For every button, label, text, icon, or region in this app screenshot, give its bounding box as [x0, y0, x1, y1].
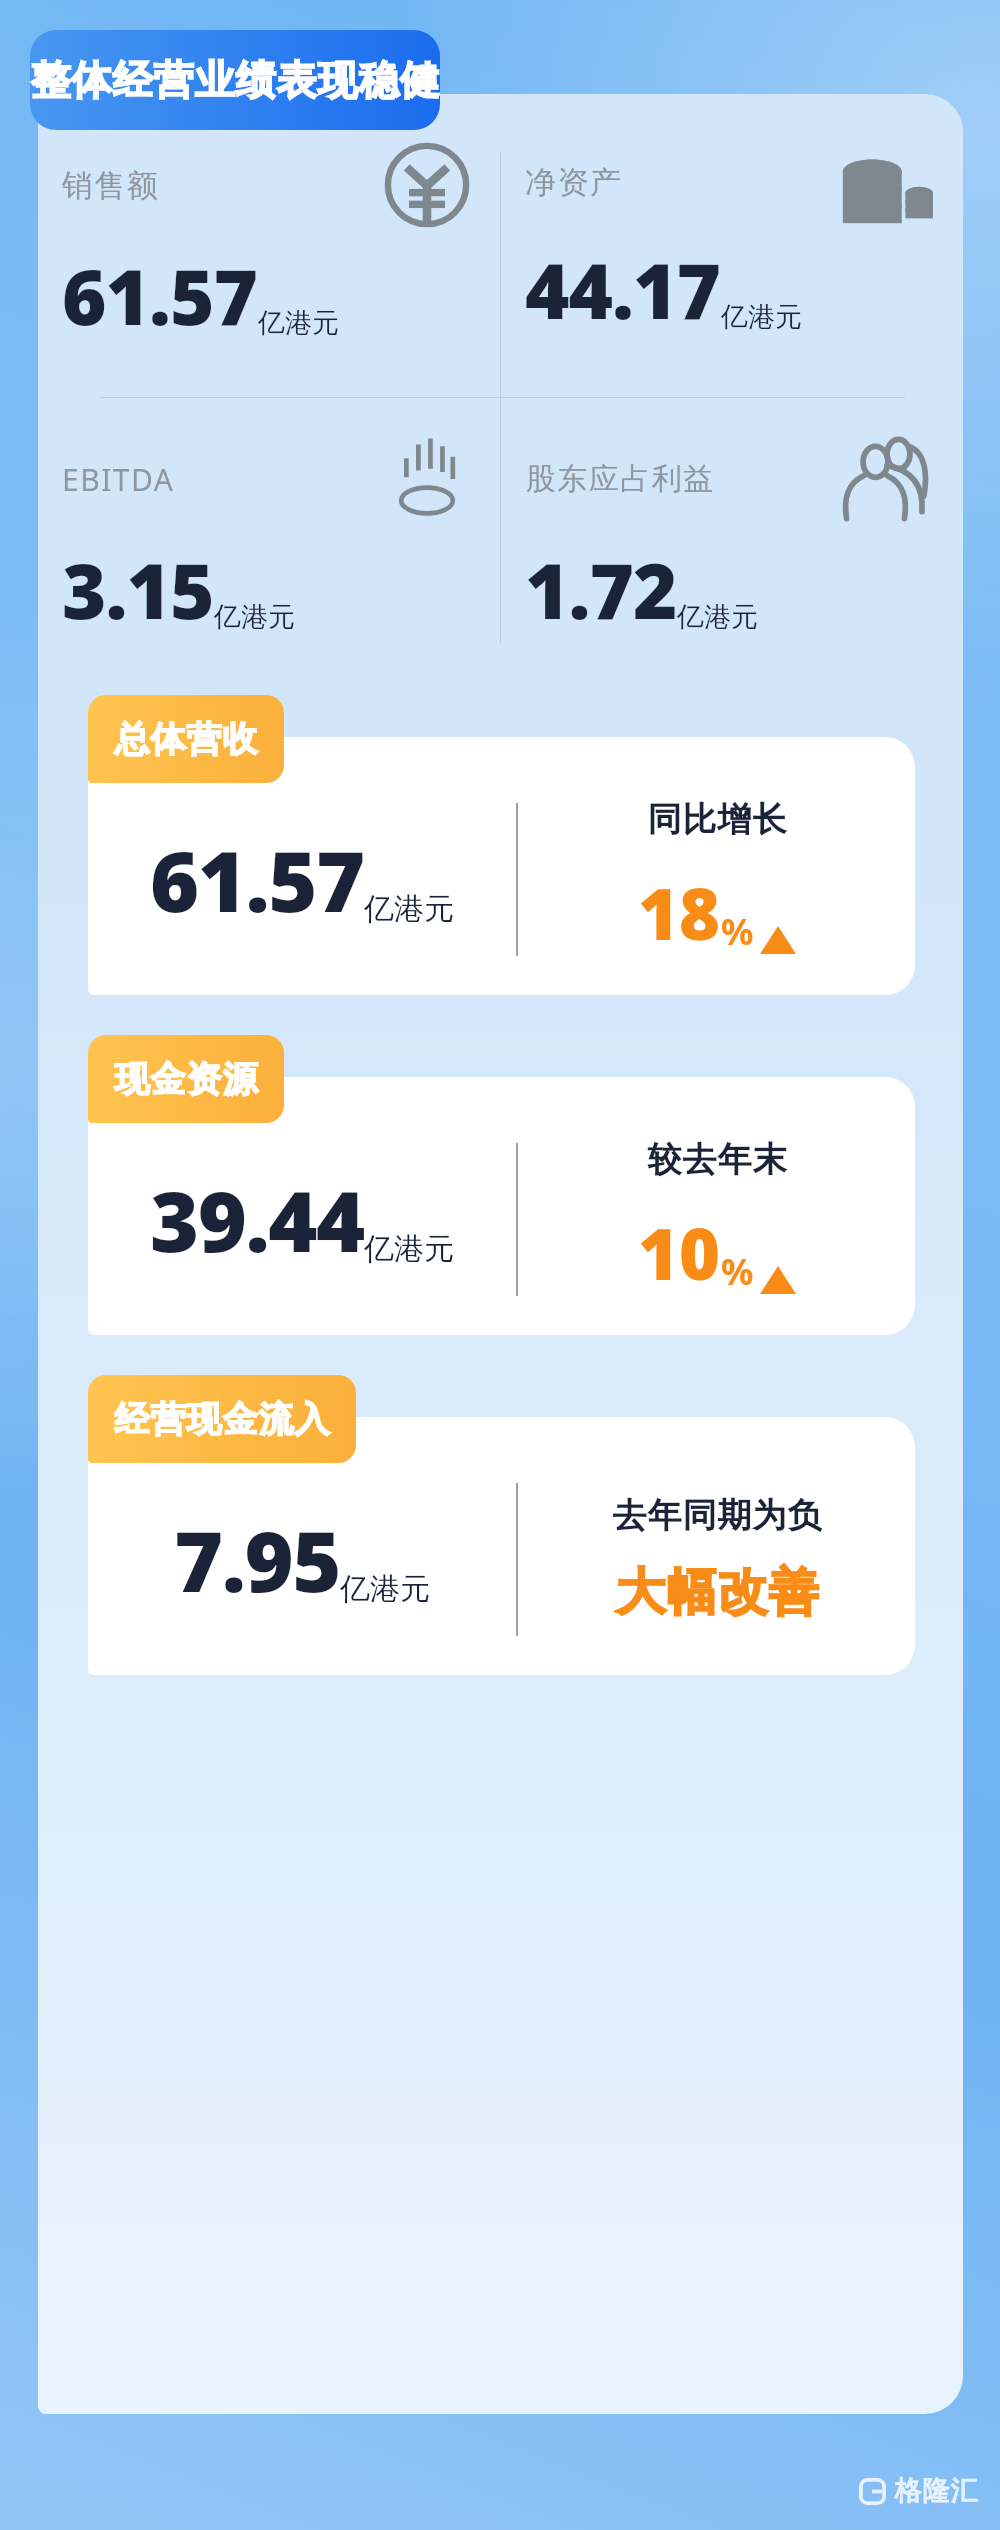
other: Sales: [384, 142, 470, 228]
staticText: 较去年末: [647, 1138, 787, 1181]
staticText: 经营现金流入: [114, 1397, 330, 1441]
staticText: 净资产: [525, 163, 623, 202]
staticText: 亿港元: [214, 600, 295, 634]
staticText: 亿港元: [340, 1570, 430, 1608]
staticText: 格隆汇: [894, 2474, 978, 2508]
staticText: 18: [638, 865, 721, 960]
staticText: 整体经营业绩表现稳健: [30, 55, 440, 105]
button[interactable]: 经营现金流入: [88, 1375, 356, 1463]
staticText: %: [721, 907, 754, 956]
staticText: 3.15: [62, 538, 214, 642]
button[interactable]: 39.44: [88, 1077, 915, 1335]
staticText: 10: [638, 1205, 721, 1300]
other: EBITDA: [384, 436, 470, 522]
staticText: 61.57: [150, 822, 364, 936]
staticText: 股东应占利益: [525, 460, 714, 498]
button[interactable]: 7.95: [88, 1417, 915, 1675]
staticText: 1.72: [525, 538, 677, 642]
staticText: %: [721, 1247, 754, 1296]
staticText: 亿港元: [258, 306, 339, 340]
staticText: 7.95: [174, 1502, 340, 1616]
staticText: 亿港元: [364, 1230, 454, 1268]
staticText: 去年同期为负: [612, 1494, 822, 1537]
button[interactable]: 61.57: [88, 737, 915, 995]
button[interactable]: 整体经营业绩表现稳健: [30, 30, 440, 130]
staticText: 大幅改善: [615, 1561, 819, 1624]
other: Shareholders profit: [841, 436, 933, 522]
staticText: 同比增长: [647, 798, 787, 841]
staticText: 销售额: [62, 166, 160, 205]
staticText: 现金资源: [114, 1057, 258, 1101]
staticText: 39.44: [150, 1162, 364, 1276]
staticText: EBITDA: [62, 459, 175, 500]
staticText: 亿港元: [721, 300, 802, 334]
staticText: 44.17: [525, 238, 721, 342]
other: Net assets: [841, 142, 933, 222]
button[interactable]: 总体营收: [88, 695, 284, 783]
staticText: 亿港元: [364, 890, 454, 928]
staticText: 亿港元: [677, 600, 758, 634]
staticText: 总体营收: [114, 717, 258, 761]
staticText: 61.57: [62, 244, 258, 348]
button[interactable]: 现金资源: [88, 1035, 284, 1123]
